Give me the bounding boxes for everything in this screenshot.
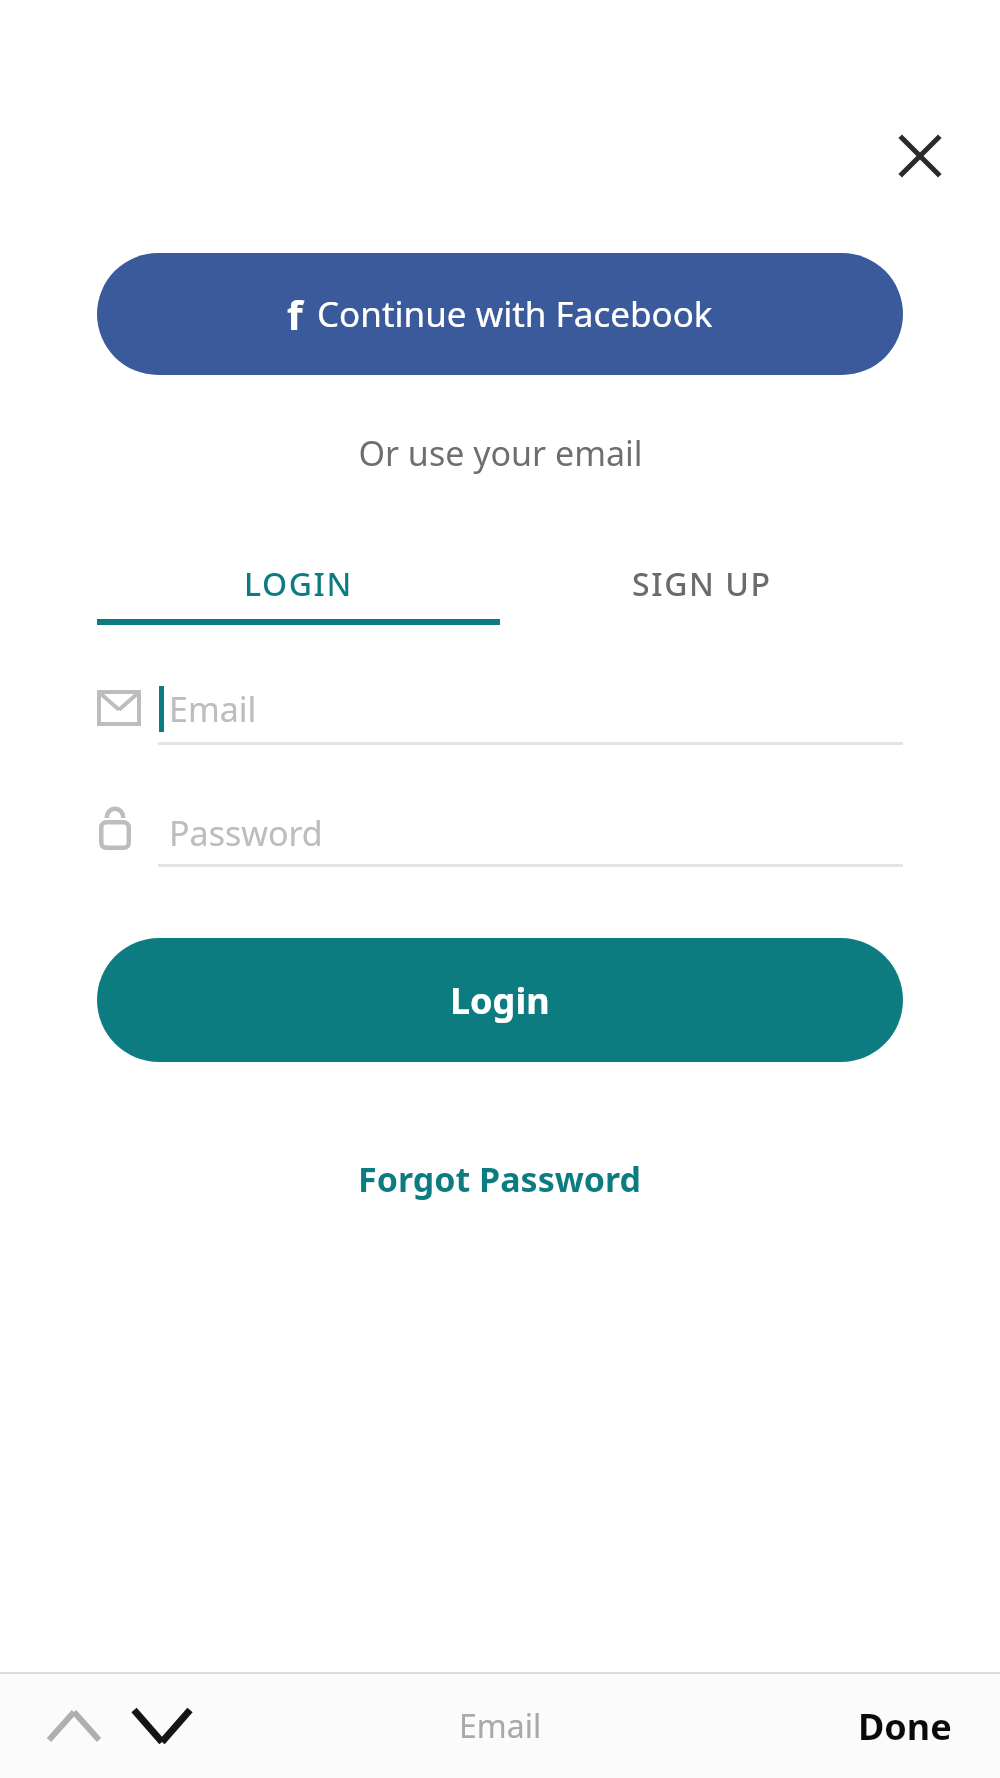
button[interactable]: Previous field [24, 1674, 124, 1778]
button[interactable]: LOGIN [97, 548, 500, 620]
button[interactable]: Forgot Password [338, 1146, 662, 1212]
staticText: Login [450, 976, 550, 1025]
staticText: Email [459, 1704, 542, 1748]
staticText: LOGIN [244, 562, 353, 606]
button[interactable]: Login [97, 938, 903, 1062]
staticText: Or use your email [358, 430, 643, 476]
button[interactable]: Email [155, 676, 903, 742]
button[interactable]: f [97, 253, 903, 375]
staticText: Password [169, 810, 323, 856]
button[interactable]: Close [876, 112, 964, 200]
button[interactable]: SIGN UP [500, 548, 903, 620]
button[interactable]: Password [155, 800, 903, 866]
button[interactable]: Next field [112, 1674, 212, 1778]
staticText: Continue with Facebook [317, 290, 713, 338]
staticText: f [287, 287, 303, 341]
staticText: Forgot Password [358, 1156, 642, 1202]
staticText: Email [169, 686, 257, 732]
button[interactable]: Done [810, 1682, 1000, 1771]
staticText: SIGN UP [632, 562, 772, 606]
staticText: Done [858, 1702, 952, 1751]
